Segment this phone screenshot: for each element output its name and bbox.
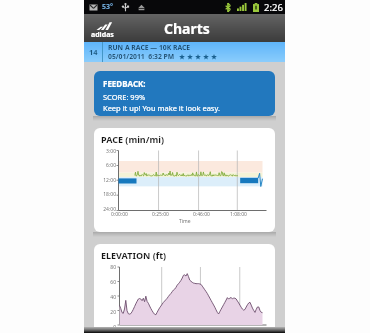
staticText: Charts [164, 19, 210, 38]
staticText: Keep it up! You make it look easy. [103, 103, 220, 113]
staticText: 6:00 [94, 162, 116, 169]
staticText: 0:25:00 [152, 211, 169, 218]
staticText: 3:00 [94, 148, 116, 155]
staticText: 20 [94, 309, 116, 316]
staticText: 24:00 [94, 206, 116, 213]
button[interactable]: ELEVATION (ft) [94, 244, 275, 333]
staticText: 53° [102, 2, 113, 12]
staticText: PACE (min/mi) [101, 133, 164, 145]
staticText: 12:00 [94, 177, 116, 184]
button[interactable]: 14 [84, 42, 285, 62]
staticText: RUN A RACE — 10K RACE [108, 43, 191, 52]
button[interactable]: adidas home [90, 20, 117, 40]
staticText: 2:26 [264, 1, 283, 14]
button[interactable]: FEEDBACK: [94, 71, 275, 116]
staticText: 60 [94, 279, 116, 286]
staticText: 14 [89, 47, 98, 57]
staticText: 1:08:00 [230, 211, 247, 218]
staticText: 0 [94, 324, 116, 331]
staticText: 80 [94, 264, 116, 271]
button[interactable]: PACE (min/mi) [94, 128, 275, 232]
staticText: SCORE: 99% [103, 92, 146, 102]
staticText: 0:46:00 [193, 211, 210, 218]
staticText: 0:00:00 [111, 211, 128, 218]
staticText: 40 [94, 294, 116, 301]
staticText: 05/01/2011 6:32 PM [108, 52, 175, 61]
staticText: ELEVATION (ft) [101, 249, 167, 261]
staticText: Time [179, 218, 191, 225]
staticText: adidas [91, 30, 114, 40]
staticText: 18:00 [94, 191, 116, 198]
staticText: FEEDBACK: [103, 78, 146, 89]
